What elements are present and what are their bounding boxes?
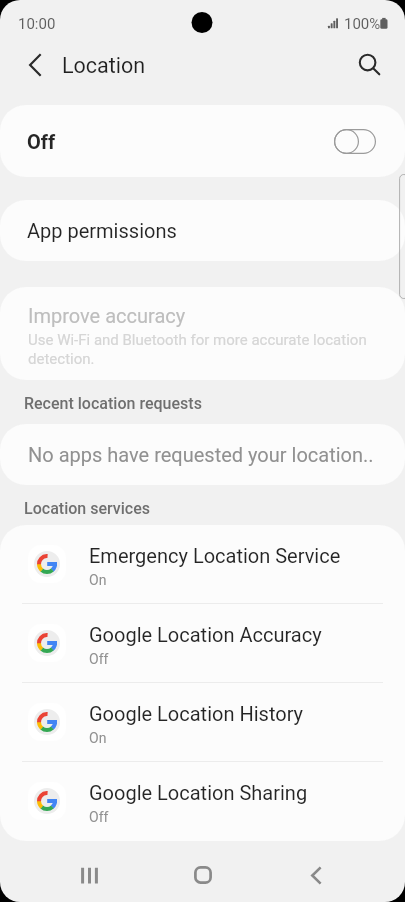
staticText: Location xyxy=(62,53,146,78)
staticText: App permissions xyxy=(27,219,177,242)
button[interactable]: App permissions xyxy=(0,200,405,261)
button[interactable]: Navigate up xyxy=(13,43,56,86)
staticText: Emergency Location Service xyxy=(89,544,341,567)
button[interactable]: Emergency Location Service xyxy=(0,525,405,603)
staticText: Off xyxy=(89,809,109,825)
button[interactable]: Google Location History xyxy=(0,683,405,761)
button[interactable]: Improve accuracy xyxy=(0,287,405,380)
staticText: Off xyxy=(89,651,109,667)
staticText: Off xyxy=(27,130,56,153)
staticText: On xyxy=(89,572,107,588)
staticText: Location services xyxy=(24,499,151,518)
staticText: Recent location requests xyxy=(24,394,202,413)
button[interactable]: Home xyxy=(146,848,259,902)
staticText: Use Wi-Fi and Bluetooth for more accurat… xyxy=(28,331,386,368)
staticText: Google Location Accuracy xyxy=(89,623,322,646)
staticText: On xyxy=(89,730,107,746)
staticText: Google Location History xyxy=(89,702,304,725)
button[interactable]: Off xyxy=(0,105,405,177)
button[interactable]: Google Location Accuracy xyxy=(0,604,405,682)
staticText: Google Location Sharing xyxy=(89,781,308,804)
button[interactable]: Google Location Sharing xyxy=(0,762,405,840)
staticText: 100% xyxy=(344,15,381,33)
staticText: No apps have requested your location.. xyxy=(28,443,374,466)
button[interactable]: Recent apps xyxy=(33,848,146,902)
button[interactable]: Back xyxy=(259,848,372,902)
button[interactable]: No apps have requested your location.. xyxy=(0,424,405,485)
staticText: Improve accuracy xyxy=(28,304,186,327)
staticText: 10:00 xyxy=(18,15,56,33)
button[interactable]: Search xyxy=(348,43,391,86)
